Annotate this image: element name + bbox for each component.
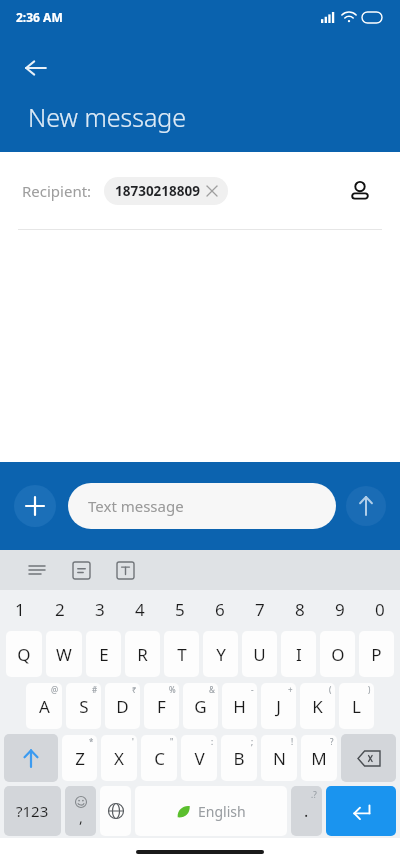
button[interactable]: 3 (80, 590, 120, 628)
button[interactable]: - (222, 683, 257, 729)
staticText: ₹ (132, 684, 137, 695)
button[interactable]: 2 (40, 590, 80, 628)
staticText: T (177, 643, 187, 666)
button[interactable]: Backspace (341, 734, 396, 782)
staticText: 2:36 AM (16, 9, 63, 25)
staticText: * (89, 736, 94, 747)
staticText: 0 (375, 598, 385, 621)
staticText: S (79, 695, 89, 718)
button[interactable]: Change language (100, 786, 131, 836)
button[interactable]: Text message (68, 483, 336, 529)
staticText: F (157, 695, 166, 718)
button[interactable]: ₹ (105, 683, 140, 729)
staticText: 8 (295, 598, 305, 621)
button[interactable]: ! (261, 735, 297, 781)
staticText: ( (329, 684, 332, 695)
button[interactable]: @ (26, 683, 62, 729)
staticText: A (39, 695, 50, 718)
staticText: 4 (135, 598, 145, 621)
button[interactable]: U (242, 631, 277, 677)
button[interactable]: 5 (160, 590, 200, 628)
button[interactable]: ? (301, 735, 337, 781)
staticText: Y (216, 643, 226, 666)
staticText: English (198, 802, 246, 821)
staticText: .? (311, 789, 317, 800)
button[interactable]: * (62, 735, 97, 781)
staticText: 7 (255, 598, 265, 621)
button[interactable]: " (141, 735, 177, 781)
button[interactable]: 0 (360, 590, 400, 628)
button[interactable]: + (261, 683, 296, 729)
staticText: ) (368, 684, 371, 695)
button[interactable]: ( (300, 683, 335, 729)
button[interactable]: % (144, 683, 179, 729)
button[interactable]: P (359, 631, 394, 677)
staticText: 9 (335, 598, 345, 621)
staticText: C (154, 747, 165, 770)
button[interactable]: Add attachment (14, 485, 56, 527)
button[interactable]: Enter (326, 786, 396, 836)
button[interactable]: ; (221, 735, 257, 781)
staticText: Recipient: (22, 181, 92, 201)
button[interactable]: # (66, 683, 101, 729)
button[interactable]: 4 (120, 590, 160, 628)
button[interactable]: .? (291, 786, 322, 836)
button[interactable]: 8 (280, 590, 320, 628)
staticText: , (79, 808, 83, 827)
staticText: W (56, 643, 72, 666)
button[interactable]: Emoji and comma (65, 786, 96, 836)
staticText: % (169, 684, 176, 695)
staticText: New message (28, 100, 187, 134)
button[interactable]: ) (339, 683, 374, 729)
staticText: & (209, 684, 215, 695)
staticText: E (99, 643, 109, 666)
button[interactable]: 1 (0, 590, 40, 628)
button[interactable]: T (164, 631, 199, 677)
button[interactable]: R (125, 631, 160, 677)
staticText: . (304, 800, 309, 822)
button[interactable]: 6 (200, 590, 240, 628)
staticText: 18730218809 (115, 182, 200, 200)
staticText: # (92, 684, 98, 695)
staticText: + (288, 684, 293, 695)
button[interactable]: English (135, 786, 287, 836)
staticText: ; (251, 736, 254, 747)
button[interactable]: Shift (4, 734, 58, 782)
staticText: - (251, 684, 254, 695)
button[interactable]: Clipboard (22, 555, 52, 585)
staticText: Q (17, 643, 31, 666)
staticText: R (137, 643, 148, 666)
button[interactable]: Back (16, 48, 56, 88)
button[interactable]: Q (6, 631, 42, 677)
button[interactable]: Contacts (342, 173, 378, 209)
staticText: ! (291, 736, 294, 747)
button[interactable]: O (320, 631, 355, 677)
staticText: ' (132, 736, 134, 747)
button[interactable]: 9 (320, 590, 360, 628)
button[interactable]: Text style (110, 555, 140, 585)
staticText: N (273, 747, 286, 770)
staticText: 5 (175, 598, 185, 621)
staticText: V (194, 747, 205, 770)
button[interactable]: Send (346, 486, 386, 526)
button[interactable]: ' (101, 735, 137, 781)
staticText: H (233, 695, 246, 718)
button[interactable]: : (181, 735, 217, 781)
button[interactable]: W (46, 631, 82, 677)
button[interactable]: & (183, 683, 218, 729)
staticText: @ (51, 684, 59, 695)
button[interactable]: E (86, 631, 121, 677)
staticText: K (312, 695, 323, 718)
staticText: : (211, 736, 214, 747)
button[interactable]: 18730218809 (104, 177, 228, 205)
button[interactable]: Y (203, 631, 238, 677)
staticText: D (116, 695, 129, 718)
button[interactable]: 7 (240, 590, 280, 628)
button[interactable]: ?123 (4, 786, 61, 836)
button[interactable]: Quick phrases (66, 555, 96, 585)
staticText: 6 (215, 598, 225, 621)
staticText: ? (330, 736, 334, 747)
staticText: X (114, 747, 124, 770)
staticText: I (296, 643, 302, 666)
button[interactable]: I (281, 631, 316, 677)
